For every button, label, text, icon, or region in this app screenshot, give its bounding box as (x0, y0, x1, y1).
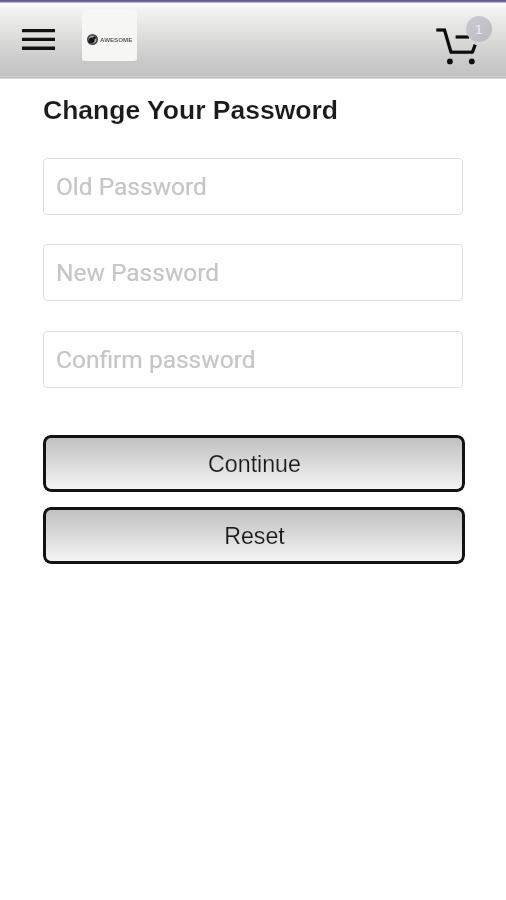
staticText: Continue (208, 451, 301, 477)
staticText: Old Password (56, 172, 207, 201)
button[interactable]: New Password (43, 244, 463, 301)
staticText: Reset (224, 523, 285, 549)
staticText: 1 (475, 22, 483, 37)
staticText: Confirm password (56, 345, 256, 374)
button[interactable]: Old Password (43, 158, 463, 215)
button[interactable]: Confirm password (43, 331, 463, 388)
button[interactable]: Reset (43, 507, 465, 564)
button[interactable]: Shopping cart (428, 7, 494, 73)
button[interactable]: Continue (43, 435, 465, 492)
staticText: AWESOME (100, 36, 133, 43)
button[interactable]: Menu (13, 18, 64, 62)
staticText: New Password (56, 258, 220, 287)
staticText: Change Your Password (43, 95, 339, 125)
button[interactable]: Awesome logo (82, 9, 137, 61)
